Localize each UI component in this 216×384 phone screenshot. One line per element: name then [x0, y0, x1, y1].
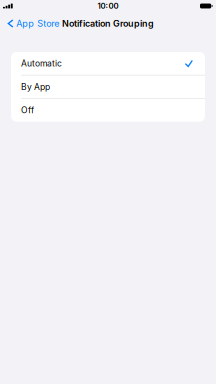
staticText: Off — [21, 105, 34, 115]
staticText: By App — [21, 82, 50, 92]
staticText: Notification Grouping — [62, 18, 154, 29]
staticText: Automatic — [21, 58, 62, 69]
staticText: 10:00 — [97, 1, 118, 11]
button[interactable]: By App — [11, 75, 205, 98]
staticText: App Store — [16, 18, 59, 29]
button[interactable]: Automatic — [11, 52, 205, 75]
button[interactable]: App Store — [0, 15, 63, 31]
button[interactable]: Off — [11, 99, 205, 122]
